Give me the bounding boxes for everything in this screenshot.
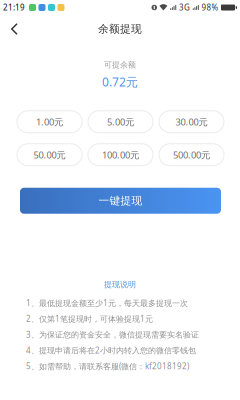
staticText: 100.00元: [102, 149, 139, 161]
staticText: 3G: [179, 2, 190, 13]
staticText: 50.00元: [33, 149, 65, 161]
staticText: 21:19: [3, 2, 25, 13]
staticText: 提现说明: [104, 280, 136, 290]
button[interactable]: 1.00元: [17, 111, 82, 133]
staticText: 1、最低提现金额至少1元，每天最多提现一次: [26, 298, 188, 308]
button[interactable]: 50.00元: [17, 144, 82, 166]
button[interactable]: 500.00元: [159, 144, 224, 166]
staticText: 5、如需帮助，请联系客服(微信：kf2018192): [26, 361, 189, 371]
staticText: 2、仅第1笔提现时，可体验提现1元: [26, 313, 153, 324]
button[interactable]: 30.00元: [159, 111, 224, 133]
button[interactable]: 一键提现: [20, 188, 221, 214]
button[interactable]: 5.00元: [88, 111, 153, 133]
button[interactable]: 100.00元: [88, 144, 153, 166]
staticText: 500.00元: [173, 149, 210, 161]
staticText: 30.00元: [175, 116, 207, 128]
staticText: 0.72元: [102, 74, 138, 90]
staticText: 可提余额: [104, 60, 136, 70]
button[interactable]: Back: [0, 16, 32, 42]
staticText: 1.00元: [36, 116, 63, 128]
staticText: 4、提现申请后将在2小时内转入您的微信零钱包: [26, 345, 196, 356]
staticText: 余额提现: [98, 22, 142, 35]
staticText: 一键提现: [98, 194, 142, 207]
staticText: 5.00元: [107, 116, 134, 128]
staticText: 98%: [202, 2, 219, 13]
staticText: 3、为保证您的资金安全，微信提现需要实名验证: [26, 329, 199, 340]
